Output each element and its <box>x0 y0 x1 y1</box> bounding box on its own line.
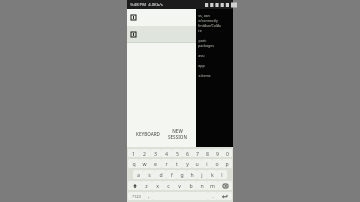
button[interactable] <box>127 26 233 43</box>
staticText: e <box>154 160 157 167</box>
staticText: u <box>195 160 199 167</box>
button[interactable]: a <box>133 170 144 179</box>
staticText: packages <box>198 43 214 48</box>
button[interactable]: 0 <box>222 149 232 157</box>
button[interactable]: Backspace <box>218 181 232 190</box>
staticText: m <box>210 182 215 189</box>
staticText: z <box>145 182 148 189</box>
button[interactable]: r <box>161 159 172 168</box>
staticText: . <box>212 193 214 200</box>
button[interactable] <box>127 9 233 26</box>
button[interactable]: l <box>217 170 227 179</box>
staticText: s <box>148 171 151 178</box>
staticText: app <box>198 63 205 68</box>
staticText: KEYBOARD <box>136 131 160 137</box>
staticText: k <box>211 171 214 178</box>
button[interactable]: d <box>155 170 166 179</box>
staticText: 7 <box>196 150 199 157</box>
staticText: i <box>206 160 208 167</box>
button[interactable]: 3 <box>150 149 161 157</box>
staticText: q <box>132 160 136 167</box>
button[interactable]: . <box>208 192 217 200</box>
button[interactable]: 5 <box>172 149 182 157</box>
button[interactable]: KEYBOARD <box>133 128 163 140</box>
button[interactable]: , <box>144 192 153 200</box>
staticText: ?123 <box>132 194 141 199</box>
staticText: 4 <box>165 150 168 157</box>
staticText: , <box>148 193 150 200</box>
staticText: SESSION <box>168 134 187 140</box>
button[interactable]: v <box>174 181 185 190</box>
button[interactable]: b <box>185 181 196 190</box>
staticText: 6 <box>186 150 189 157</box>
button[interactable]: 1 <box>128 149 139 157</box>
staticText: 0 <box>226 150 229 157</box>
button[interactable]: k <box>207 170 217 179</box>
staticText: 2 <box>143 150 146 157</box>
staticText: 1 <box>132 150 135 157</box>
button[interactable]: 8 <box>202 149 212 157</box>
button[interactable]: j <box>197 170 207 179</box>
staticText: te <box>198 28 202 33</box>
button[interactable]: w <box>139 159 150 168</box>
staticText: ss, asn <box>198 13 210 18</box>
button[interactable]: s <box>144 170 155 179</box>
staticText: h <box>190 171 194 178</box>
button[interactable]: n <box>196 181 207 190</box>
button[interactable]: f <box>166 170 177 179</box>
staticText: port: <box>198 38 207 43</box>
button[interactable]: i <box>202 159 212 168</box>
button[interactable]: NEW <box>165 127 193 141</box>
button[interactable]: m <box>207 181 218 190</box>
button[interactable]: h <box>187 170 197 179</box>
button[interactable]: 4 <box>161 149 172 157</box>
staticText: 9:48 PM 4.0Kb/s <box>130 2 163 8</box>
button[interactable]: Enter <box>217 192 232 200</box>
button[interactable]: q <box>128 159 139 168</box>
staticText: 9 <box>216 150 219 157</box>
button[interactable]: 6 <box>182 149 192 157</box>
staticText: b <box>189 182 193 189</box>
button[interactable]: x <box>152 181 163 190</box>
staticText: 5 <box>176 150 179 157</box>
staticText: n <box>200 182 204 189</box>
staticText: j <box>201 171 203 178</box>
staticText: a <box>137 171 140 178</box>
staticText: 8 <box>206 150 209 157</box>
button[interactable]: p <box>222 159 232 168</box>
staticText: fmtAsn/ColAs <box>198 23 221 28</box>
button[interactable]: z <box>141 181 152 190</box>
button[interactable]: 2 <box>139 149 150 157</box>
button[interactable]: t <box>172 159 182 168</box>
staticText: g <box>180 171 184 178</box>
staticText: y <box>186 160 189 167</box>
button[interactable]: u <box>192 159 202 168</box>
staticText: w <box>142 160 147 167</box>
button[interactable]: ?123 <box>128 192 144 200</box>
staticText: o <box>215 160 219 167</box>
button[interactable]: Shift <box>128 181 141 190</box>
button[interactable]: c <box>163 181 174 190</box>
button[interactable]: y <box>182 159 192 168</box>
button[interactable]: e <box>150 159 161 168</box>
staticText: ass: <box>198 53 205 58</box>
staticText: x <box>156 182 159 189</box>
button[interactable]: g <box>177 170 187 179</box>
button[interactable]: ss, asn <box>196 9 233 147</box>
staticText: d <box>159 171 163 178</box>
button[interactable]: 7 <box>192 149 202 157</box>
staticText: e/connectly <box>198 18 218 23</box>
button[interactable]: 9 <box>212 149 222 157</box>
staticText: c <box>167 182 170 189</box>
staticText: f <box>171 171 173 178</box>
staticText: 3 <box>154 150 157 157</box>
staticText: v <box>178 182 181 189</box>
staticText: NEW <box>172 128 183 134</box>
staticText: l <box>221 171 223 178</box>
staticText: s:items <box>198 73 211 78</box>
staticText: r <box>165 160 168 167</box>
staticText: p <box>225 160 229 167</box>
staticText: t <box>176 160 178 167</box>
button[interactable]: o <box>212 159 222 168</box>
